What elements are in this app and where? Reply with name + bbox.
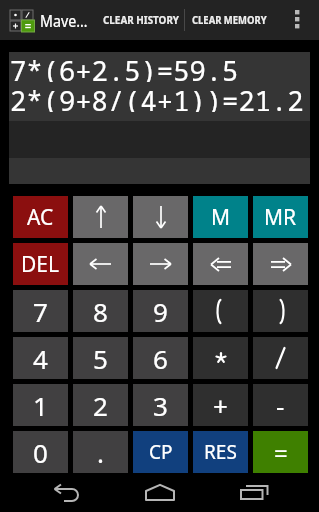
staticText: 9 [153, 294, 168, 329]
staticText: 6 [153, 341, 168, 376]
staticText: - [276, 388, 285, 423]
button[interactable]: 4 [13, 337, 68, 379]
button[interactable]: 3 [133, 384, 188, 426]
staticText: 1 [33, 388, 48, 423]
button[interactable]: 0 [13, 431, 68, 473]
button[interactable] [253, 337, 308, 379]
staticText: MR [264, 203, 297, 232]
button[interactable] [226, 473, 282, 512]
button[interactable]: 6 [133, 337, 188, 379]
button[interactable]: - [253, 384, 308, 426]
staticText: 2 [93, 388, 108, 423]
staticText: CLEAR HISTORY [103, 13, 179, 27]
staticText: 0 [33, 435, 48, 470]
staticText: 2*(9+8/(4+1))=21.2 [10, 82, 304, 112]
button[interactable] [193, 290, 248, 332]
staticText: AC [27, 203, 54, 232]
staticText: CP [149, 439, 173, 465]
staticText: CLEAR MEMORY [192, 13, 267, 27]
button[interactable] [132, 473, 188, 512]
staticText: = [274, 436, 288, 469]
button[interactable] [38, 473, 94, 512]
button[interactable] [193, 337, 248, 379]
button[interactable]: 5 [73, 337, 128, 379]
staticText: M [211, 203, 231, 232]
button[interactable]: CLEAR HISTORY [98, 0, 189, 40]
staticText: Mave… [40, 10, 88, 32]
staticText: 5 [93, 341, 108, 376]
button[interactable] [253, 243, 308, 285]
button[interactable]: 1 [13, 384, 68, 426]
button[interactable]: RES [193, 431, 248, 473]
staticText: + [213, 388, 228, 423]
staticText: 3 [153, 388, 168, 423]
button[interactable]: 7 [13, 290, 68, 332]
staticText: DEL [21, 250, 60, 279]
staticText: . [97, 435, 104, 470]
button[interactable] [133, 243, 188, 285]
button[interactable] [73, 196, 128, 238]
button[interactable] [133, 196, 188, 238]
button[interactable]: 2 [73, 384, 128, 426]
staticText: 8 [93, 294, 108, 329]
button[interactable]: 8 [73, 290, 128, 332]
button[interactable] [284, 0, 310, 40]
button[interactable] [193, 243, 248, 285]
button[interactable]: 9 [133, 290, 188, 332]
staticText: 7 [33, 294, 48, 329]
button[interactable]: CP [133, 431, 188, 473]
button[interactable] [73, 243, 128, 285]
staticText: RES [204, 439, 237, 465]
button[interactable] [253, 290, 308, 332]
staticText: 7*(6+2.5)=59.5 [10, 52, 239, 82]
button[interactable]: CLEAR MEMORY [187, 0, 280, 40]
button[interactable]: = [253, 431, 308, 473]
button[interactable]: M [193, 196, 248, 238]
button[interactable]: DEL [13, 243, 68, 285]
button[interactable]: + [193, 384, 248, 426]
button[interactable]: . [73, 431, 128, 473]
button[interactable]: AC [13, 196, 68, 238]
button[interactable]: MR [253, 196, 308, 238]
staticText: 4 [33, 341, 48, 376]
